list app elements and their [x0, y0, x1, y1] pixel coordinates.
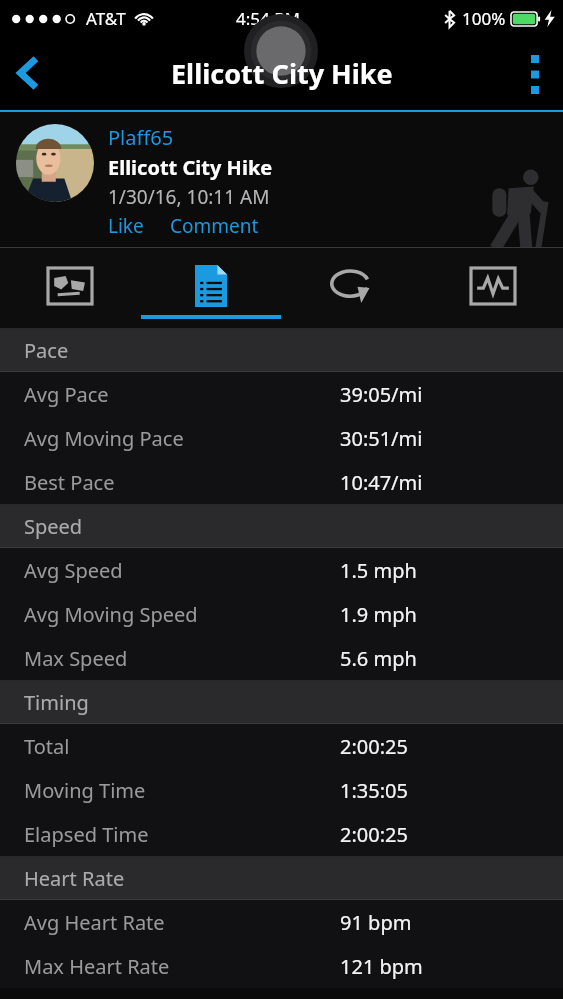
button[interactable]: Avg Moving Speed — [0, 592, 563, 636]
staticText: Avg Moving Speed — [24, 601, 198, 628]
button[interactable]: Charts — [433, 258, 553, 314]
button[interactable]: Max Heart Rate — [0, 944, 563, 988]
staticText: 91 bpm — [340, 909, 412, 936]
staticText: Best Pace — [24, 469, 115, 496]
staticText: Plaff65 — [108, 124, 174, 151]
staticText: Avg Heart Rate — [24, 909, 165, 936]
button[interactable]: Back — [0, 36, 56, 110]
staticText: 2:00:25 — [340, 821, 408, 848]
staticText: Moving Time — [24, 777, 146, 804]
staticText: AT&T — [86, 7, 126, 30]
staticText: Speed — [24, 513, 83, 540]
button[interactable]: Avg Heart Rate — [0, 900, 563, 944]
staticText: 4:54 PM — [236, 7, 300, 30]
button[interactable]: Map — [10, 258, 130, 314]
staticText: Ellicott City Hike — [108, 154, 273, 181]
staticText: Like — [108, 213, 144, 239]
staticText: Total — [24, 733, 70, 760]
button[interactable]: More options — [507, 36, 563, 110]
staticText: 1.9 mph — [340, 601, 417, 628]
staticText: Ellicott City Hike — [171, 55, 393, 92]
staticText: 39:05/mi — [340, 381, 423, 408]
button[interactable]: Total — [0, 724, 563, 768]
staticText: Timing — [24, 689, 89, 716]
staticText: 10:47/mi — [340, 469, 423, 496]
staticText: 5.6 mph — [340, 645, 417, 672]
staticText: Elapsed Time — [24, 821, 149, 848]
staticText: Pace — [24, 337, 69, 364]
staticText: 121 bpm — [340, 953, 423, 980]
button[interactable]: Comment — [170, 213, 259, 239]
staticText: 1.5 mph — [340, 557, 417, 584]
button[interactable]: Avg Speed — [0, 548, 563, 592]
button[interactable]: Avg Moving Pace — [0, 416, 563, 460]
staticText: 2:00:25 — [340, 733, 408, 760]
staticText: Heart Rate — [24, 865, 125, 892]
button[interactable]: Details — [151, 258, 271, 314]
button[interactable]: Like — [108, 213, 144, 239]
staticText: 1/30/16, 10:11 AM — [108, 184, 270, 210]
staticText: Max Heart Rate — [24, 953, 170, 980]
staticText: Max Speed — [24, 645, 128, 672]
staticText: 30:51/mi — [340, 425, 423, 452]
staticText: 100% — [462, 7, 506, 30]
button[interactable]: Laps — [292, 258, 412, 314]
staticText: Avg Moving Pace — [24, 425, 184, 452]
staticText: Comment — [170, 213, 259, 239]
button[interactable]: Best Pace — [0, 460, 563, 504]
button[interactable]: Avg Pace — [0, 372, 563, 416]
button[interactable]: Elapsed Time — [0, 812, 563, 856]
button[interactable]: Moving Time — [0, 768, 563, 812]
staticText: Avg Speed — [24, 557, 123, 584]
staticText: Avg Pace — [24, 381, 109, 408]
staticText: 1:35:05 — [340, 777, 408, 804]
button[interactable]: Max Speed — [0, 636, 563, 680]
